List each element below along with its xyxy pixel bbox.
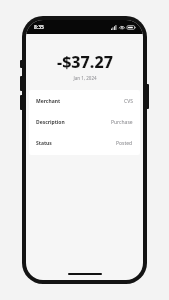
staticText: CVS — [124, 98, 133, 105]
button[interactable]: Merchant — [36, 98, 133, 105]
staticText: -$37.27 — [57, 51, 113, 73]
other: Silent switch — [20, 60, 23, 68]
staticText: Merchant — [36, 98, 61, 105]
staticText: Posted — [116, 140, 133, 147]
staticText: Purchase — [111, 119, 133, 126]
staticText: 8:35 — [34, 24, 44, 31]
staticText: Jan 1, 2024 — [73, 75, 97, 81]
other: Volume down — [20, 95, 23, 110]
button[interactable]: Status — [36, 140, 133, 147]
other: Power — [146, 84, 149, 109]
other: Volume up — [20, 76, 23, 91]
button[interactable]: Description — [36, 119, 133, 126]
other: Signal — [111, 25, 117, 30]
other: Battery — [127, 25, 136, 30]
staticText: Status — [36, 140, 52, 147]
other: Wi-Fi — [119, 25, 125, 30]
staticText: Description — [36, 119, 65, 126]
